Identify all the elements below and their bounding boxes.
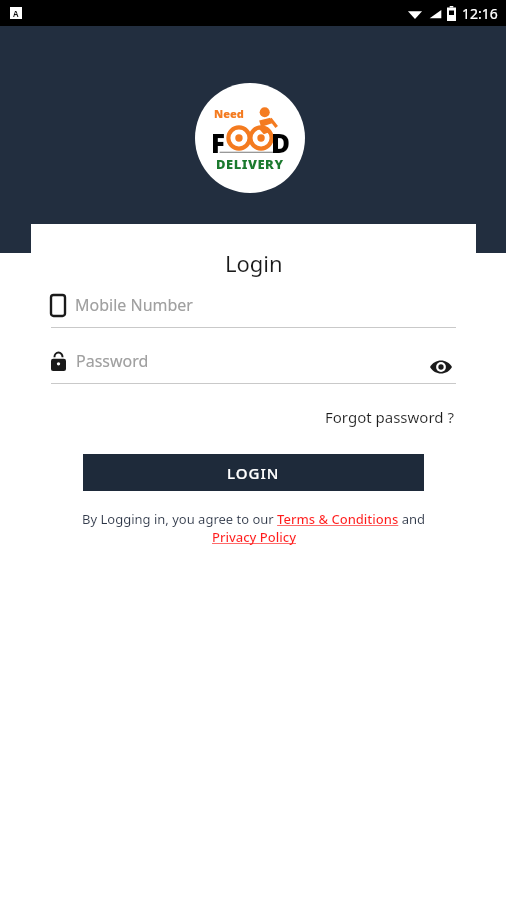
staticText: Login <box>225 248 283 278</box>
button[interactable]: LOGIN <box>83 454 424 491</box>
staticText: F <box>211 125 226 160</box>
staticText: Privacy Policy <box>212 528 296 546</box>
button[interactable]: Mobile Number <box>51 294 456 328</box>
staticText: By Logging in, you agree to our Terms & … <box>82 510 425 528</box>
staticText: LOGIN <box>227 463 280 483</box>
staticText: 12:16 <box>462 4 498 23</box>
staticText: Forgot password ? <box>325 407 454 427</box>
button[interactable]: By Logging in, you agree to our Terms & … <box>82 510 425 528</box>
staticText: A <box>13 8 19 19</box>
button[interactable]: Password <box>51 350 456 384</box>
button[interactable]: Show password <box>426 352 456 382</box>
staticText: Need <box>214 106 244 121</box>
staticText: Mobile Number <box>75 294 193 316</box>
button[interactable]: Forgot password ? <box>325 407 454 427</box>
staticText: D <box>271 125 291 160</box>
button[interactable]: Privacy Policy <box>212 528 296 546</box>
staticText: DELIVERY <box>216 155 284 173</box>
staticText: Password <box>76 350 149 372</box>
